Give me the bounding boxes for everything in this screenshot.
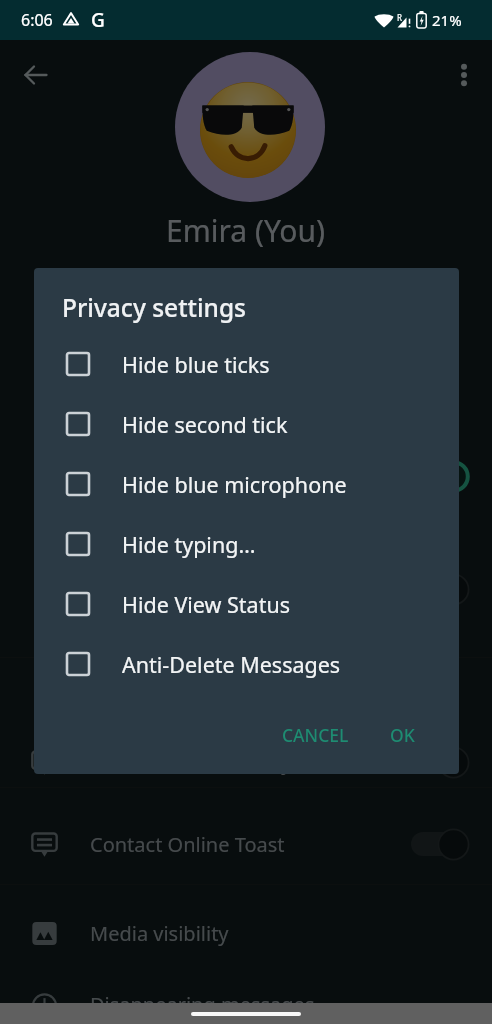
staticText: Custom notifications xyxy=(90,576,284,603)
staticText: Media visibility xyxy=(90,920,229,947)
staticText: Contact Online Notify xyxy=(90,749,292,776)
button[interactable]: Contact Online Toast xyxy=(0,800,492,888)
button[interactable]: Hide blue ticks xyxy=(34,334,459,394)
staticText: Hide blue ticks xyxy=(122,350,270,379)
button[interactable]: CANCEL xyxy=(270,714,361,756)
staticText: R xyxy=(397,12,402,23)
button[interactable]: Hide second tick xyxy=(34,394,459,454)
button[interactable]: Mute notifications xyxy=(0,432,492,520)
button[interactable]: OK xyxy=(378,714,427,756)
button[interactable]: More options xyxy=(444,55,484,95)
staticText: Contact Online Toast xyxy=(90,831,285,858)
staticText: 6:06 xyxy=(21,9,53,31)
button[interactable]: Hide typing… xyxy=(34,514,459,574)
staticText: Disappearing messages xyxy=(90,991,315,1018)
button[interactable]: Back xyxy=(16,55,56,95)
staticText: G xyxy=(91,7,105,33)
button[interactable]: Custom notifications xyxy=(0,545,492,633)
button[interactable]: Contact Online Notify xyxy=(0,718,492,806)
staticText: OK xyxy=(390,723,415,747)
staticText: Emira (You) xyxy=(166,210,326,251)
staticText: Hide blue microphone xyxy=(122,470,347,499)
staticText: 21% xyxy=(432,10,462,30)
staticText: Hide View Status xyxy=(122,590,291,619)
button[interactable]: Anti-Delete Messages xyxy=(34,634,459,694)
button[interactable]: Media visibility xyxy=(0,889,492,977)
staticText: Mute notifications xyxy=(90,463,261,490)
staticText: Anti-Delete Messages xyxy=(122,650,341,679)
button[interactable]: Profile photo xyxy=(175,52,325,202)
button[interactable]: Hide blue microphone xyxy=(34,454,459,514)
button[interactable]: Disappearing messages xyxy=(0,960,492,1024)
staticText: Hide typing… xyxy=(122,530,256,559)
staticText: Privacy settings xyxy=(62,291,246,324)
staticText: Hide second tick xyxy=(122,410,288,439)
staticText: CANCEL xyxy=(282,723,349,747)
button[interactable]: Hide View Status xyxy=(34,574,459,634)
